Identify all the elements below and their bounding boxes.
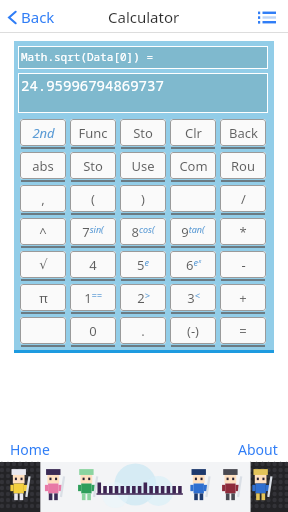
staticText: Back [21,7,55,27]
staticText: Rou [231,157,255,175]
staticText: Com [179,157,208,175]
button[interactable]: 8cos( [120,218,166,245]
button[interactable]: Sto [70,152,116,179]
button[interactable]: 2> [120,284,166,311]
staticText: - [241,256,246,274]
staticText: abs [32,157,54,175]
staticText: ( [91,190,95,208]
staticText: + [239,289,247,307]
button[interactable]: + [220,284,266,311]
staticText: / [241,190,246,208]
staticText: Use [131,157,155,175]
staticText: Home [10,440,50,459]
staticText: (-) [187,322,199,340]
staticText: 3< [187,289,200,307]
button[interactable]: * [220,218,266,245]
staticText: 2> [137,289,150,307]
staticText: 5e [137,256,149,274]
button[interactable]: Back [220,119,266,146]
staticText: = [239,322,247,340]
button[interactable]: Advertisement [0,462,288,512]
button[interactable]: Rou [220,152,266,179]
button[interactable]: Use [120,152,166,179]
staticText: Sto [133,124,153,142]
staticText: 4 [89,256,97,274]
staticText: Clr [185,124,202,142]
staticText: 9tan( [181,223,205,241]
button[interactable]: Clr [170,119,216,146]
button[interactable] [20,317,66,344]
button[interactable]: , [20,185,66,212]
button[interactable]: 2nd [20,119,66,146]
staticText: . [141,322,145,340]
button[interactable] [170,185,216,212]
button[interactable]: Com [170,152,216,179]
staticText: 0 [89,322,97,340]
button[interactable]: π [20,284,66,311]
staticText: ^ [39,223,47,241]
button[interactable]: Back [6,3,57,31]
button[interactable]: ^ [20,218,66,245]
button[interactable]: About [236,438,280,461]
staticText: ) [141,190,145,208]
button[interactable]: . [120,317,166,344]
staticText: , [41,190,45,208]
button[interactable]: 7sin( [70,218,116,245]
button[interactable]: 0 [70,317,116,344]
button[interactable]: 1== [70,284,116,311]
staticText: √ [39,257,48,272]
staticText: Back [229,124,258,142]
button[interactable]: √ [20,251,66,278]
staticText: Func [78,124,108,142]
staticText: Calculator [108,7,180,27]
button[interactable]: Home [8,438,52,461]
button[interactable]: Func [70,119,116,146]
staticText: 24.95996794869737 [21,76,164,95]
staticText: π [39,289,48,307]
staticText: 1== [84,289,102,307]
staticText: Math.sqrt(Data[0]) = [21,49,153,64]
button[interactable]: 9tan( [170,218,216,245]
button[interactable]: (-) [170,317,216,344]
button[interactable]: 4 [70,251,116,278]
button[interactable]: Menu [254,4,280,30]
button[interactable]: 3< [170,284,216,311]
staticText: About [238,440,278,459]
button[interactable]: 5e [120,251,166,278]
staticText: Sto [83,157,103,175]
button[interactable]: abs [20,152,66,179]
staticText: 7sin( [82,223,104,241]
button[interactable]: = [220,317,266,344]
button[interactable]: - [220,251,266,278]
button[interactable]: ) [120,185,166,212]
staticText: 6eˣ [186,256,201,274]
button[interactable]: / [220,185,266,212]
staticText: 8cos( [131,223,155,241]
button[interactable]: Sto [120,119,166,146]
staticText: * [239,223,247,241]
button[interactable]: 6eˣ [170,251,216,278]
button[interactable]: ( [70,185,116,212]
staticText: 2nd [32,124,55,142]
